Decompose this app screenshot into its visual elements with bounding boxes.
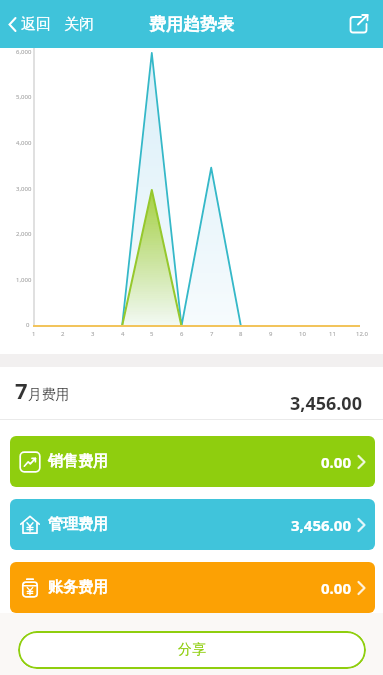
button[interactable]: 关闭 bbox=[64, 15, 94, 34]
staticText: 9 bbox=[269, 330, 273, 338]
staticText: 5,000 bbox=[16, 93, 32, 101]
staticText: 管理费用 bbox=[48, 515, 108, 534]
staticText: 8 bbox=[239, 330, 243, 338]
staticText: 4 bbox=[121, 330, 125, 338]
button[interactable]: 分享 bbox=[18, 631, 366, 669]
staticText: 1 bbox=[32, 330, 36, 338]
staticText: 6 bbox=[180, 330, 184, 338]
staticText: 4,000 bbox=[16, 139, 32, 147]
staticText: 6,000 bbox=[16, 48, 32, 56]
button[interactable]: 管理费用 bbox=[10, 499, 375, 550]
staticText: 0.00 bbox=[321, 578, 351, 598]
staticText: 12.0 bbox=[356, 330, 368, 338]
staticText: 返回 bbox=[21, 15, 51, 34]
staticText: 1,000 bbox=[16, 276, 32, 284]
staticText: 3,000 bbox=[16, 185, 32, 193]
staticText: 账务费用 bbox=[48, 578, 108, 597]
staticText: 3 bbox=[91, 330, 95, 338]
button[interactable]: 返回 bbox=[8, 15, 51, 34]
staticText: 11 bbox=[329, 330, 336, 338]
staticText: 3,456.00 bbox=[291, 515, 351, 535]
staticText: 分享 bbox=[178, 641, 206, 659]
staticText: 0.00 bbox=[321, 452, 351, 472]
staticText: 7 bbox=[210, 330, 214, 338]
staticText: 5 bbox=[150, 330, 154, 338]
staticText: 销售费用 bbox=[48, 452, 108, 471]
staticText: 0 bbox=[26, 321, 30, 329]
staticText: 费用趋势表 bbox=[149, 14, 234, 35]
staticText: 7月费用 bbox=[15, 375, 70, 405]
button[interactable]: 账务费用 bbox=[10, 562, 375, 613]
staticText: 10 bbox=[299, 330, 306, 338]
staticText: 3,456.00 bbox=[290, 391, 362, 416]
staticText: 2,000 bbox=[16, 230, 32, 238]
button[interactable] bbox=[347, 12, 371, 36]
button[interactable]: 销售费用 bbox=[10, 436, 375, 487]
staticText: 2 bbox=[61, 330, 65, 338]
